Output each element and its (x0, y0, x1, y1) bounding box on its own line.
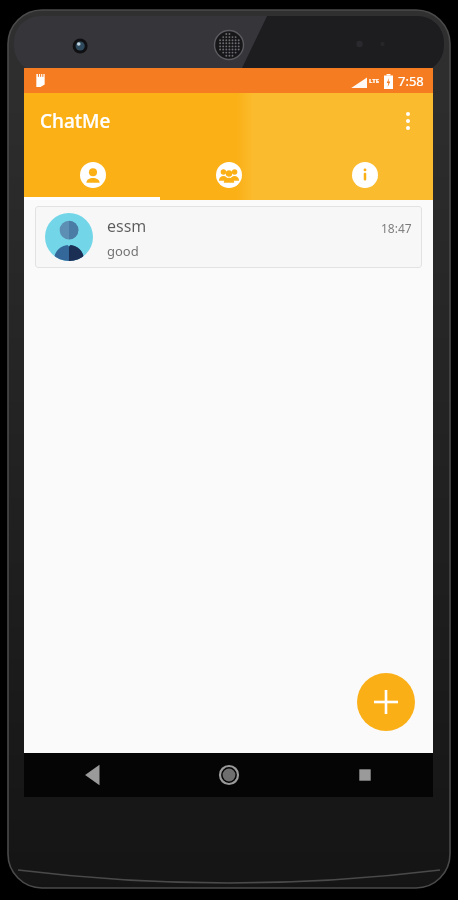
button[interactable]: New chat (357, 673, 415, 731)
button[interactable]: Contacts (24, 149, 161, 200)
button[interactable]: Info (297, 149, 433, 200)
button[interactable]: Home (161, 753, 297, 797)
staticText: 18:47 (381, 220, 412, 236)
staticText: good (107, 242, 139, 260)
button[interactable]: Back (24, 753, 161, 797)
staticText: 7:58 (398, 72, 424, 90)
button[interactable]: Recents (297, 753, 433, 797)
button[interactable]: More options (387, 100, 429, 142)
staticText: ChatMe (40, 108, 111, 134)
button[interactable]: Groups (161, 149, 297, 200)
button[interactable]: essm (35, 206, 422, 268)
staticText: LTE (369, 77, 380, 85)
staticText: essm (107, 215, 147, 237)
